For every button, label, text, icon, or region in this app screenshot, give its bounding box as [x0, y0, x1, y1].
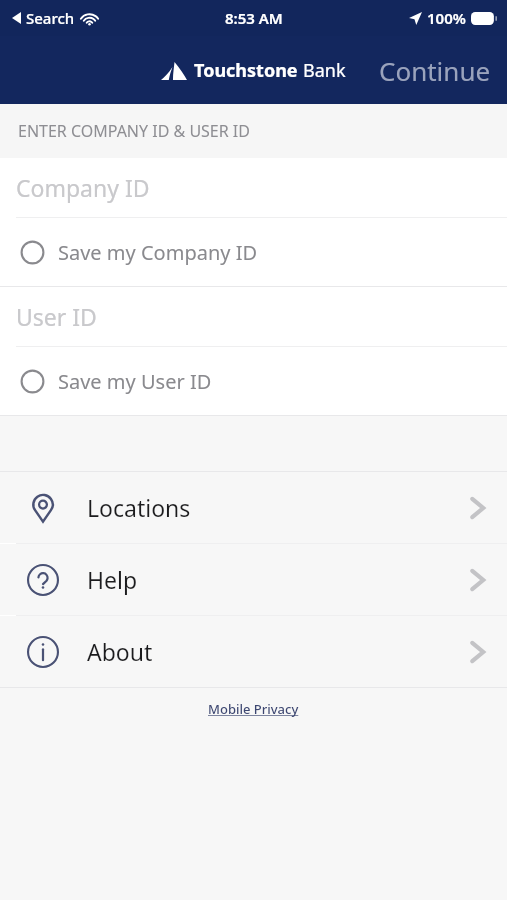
staticText: Touchstone — [194, 58, 298, 83]
staticText: Locations — [87, 492, 191, 523]
staticText: Help — [87, 564, 138, 595]
button[interactable]: Save my User ID — [0, 347, 507, 415]
button[interactable]: Continue — [363, 43, 507, 98]
staticText: Search — [26, 8, 75, 28]
button[interactable]: User ID — [0, 287, 507, 346]
staticText: User ID — [16, 301, 97, 332]
staticText: 100% — [427, 8, 466, 28]
staticText: Save my Company ID — [58, 239, 258, 266]
staticText: Bank — [303, 58, 346, 83]
staticText: 8:53 AM — [225, 8, 283, 28]
staticText: Save my User ID — [58, 368, 212, 395]
staticText: About — [87, 636, 153, 667]
button[interactable]: Save my Company ID — [0, 218, 507, 286]
button[interactable]: Company ID — [0, 158, 507, 217]
button[interactable]: Locations — [0, 472, 507, 543]
staticText: ENTER COMPANY ID & USER ID — [18, 120, 250, 142]
button[interactable]: About — [0, 616, 507, 687]
staticText: Continue — [379, 53, 491, 88]
staticText: Company ID — [16, 172, 150, 203]
button[interactable]: Help — [0, 544, 507, 615]
staticText: Mobile Privacy — [208, 700, 299, 718]
button[interactable]: Mobile Privacy — [190, 688, 317, 730]
